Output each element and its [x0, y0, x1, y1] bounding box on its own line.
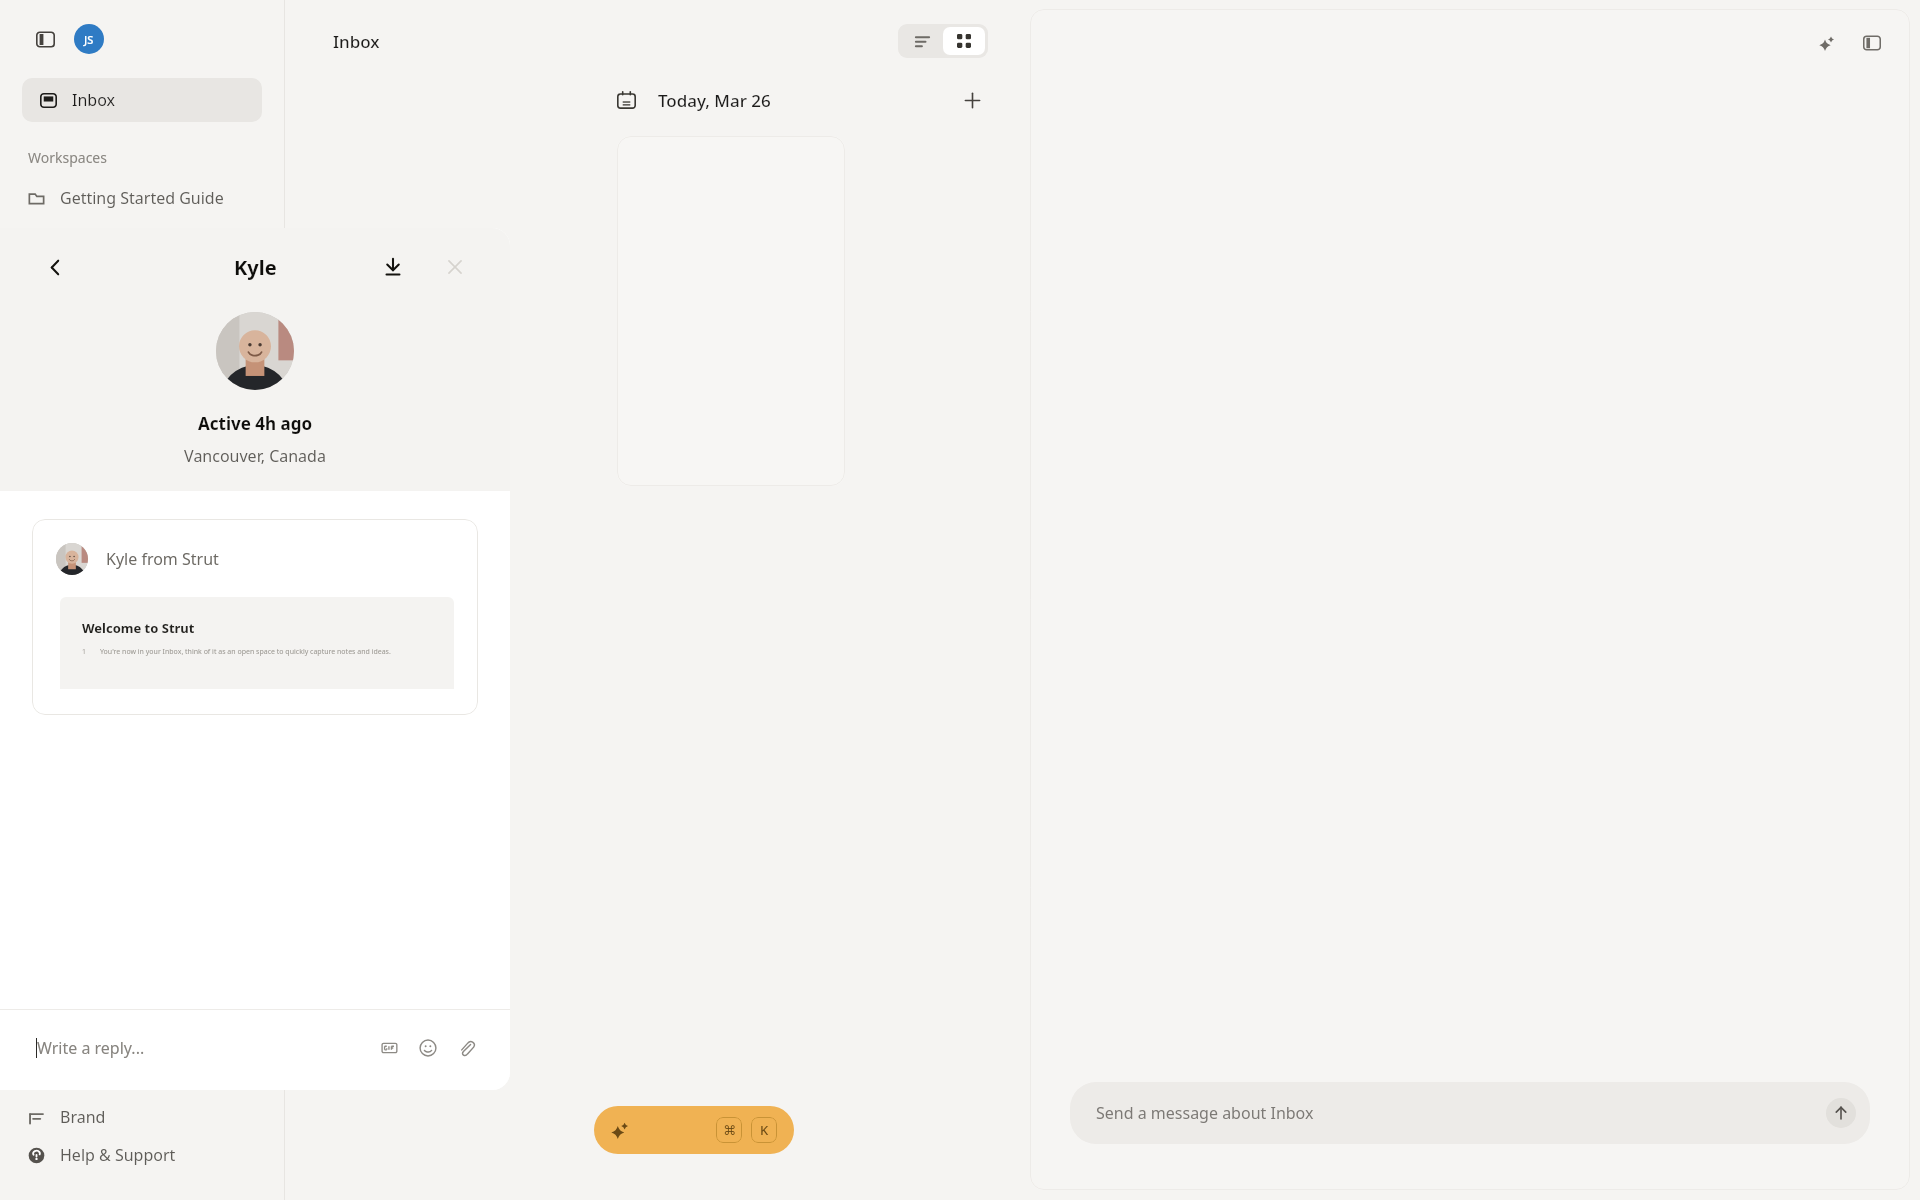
button[interactable]: Toggle panel	[1856, 27, 1888, 59]
button[interactable]: JS	[74, 24, 104, 54]
staticText: Welcome to Strut	[82, 619, 195, 637]
staticText: Workspaces	[28, 148, 107, 167]
button[interactable]: Help & Support	[0, 1136, 284, 1174]
button[interactable]: Getting Started Guide	[0, 181, 284, 215]
staticText: You're now in your Inbox, think of it as…	[100, 647, 391, 657]
button[interactable]: Download	[376, 250, 410, 284]
staticText: Today, Mar 26	[658, 89, 771, 112]
staticText: JS	[84, 32, 94, 47]
button[interactable]: Back	[38, 250, 72, 284]
button[interactable]: Send a message about Inbox	[1070, 1082, 1870, 1144]
button[interactable]: Command menu	[594, 1106, 794, 1154]
staticText: Inbox	[333, 30, 380, 53]
button[interactable]: List view	[901, 27, 943, 55]
button[interactable]: Send	[1826, 1098, 1856, 1128]
staticText: Vancouver, Canada	[0, 445, 510, 467]
staticText: Send a message about Inbox	[1096, 1102, 1314, 1124]
button[interactable]: GIF	[376, 1034, 404, 1062]
button[interactable]: Emoji	[414, 1034, 442, 1062]
button[interactable]: Brand	[0, 1098, 284, 1136]
button[interactable]: Write a reply...	[0, 1010, 510, 1090]
staticText: Help & Support	[60, 1144, 176, 1166]
staticText: K	[760, 1121, 769, 1139]
staticText: Kyle from Strut	[106, 548, 219, 570]
button[interactable]: Kyle from Strut	[32, 519, 478, 715]
button[interactable]: Close	[438, 250, 472, 284]
button[interactable]: Toggle sidebar	[28, 22, 62, 56]
staticText: Getting Started Guide	[60, 187, 224, 209]
button[interactable]: AI assist	[1810, 27, 1842, 59]
staticText: ⌘	[723, 1123, 736, 1138]
button[interactable]: Add	[956, 84, 988, 116]
staticText: Kyle	[234, 254, 277, 281]
staticText: Active 4h ago	[0, 412, 510, 435]
staticText: 1	[82, 647, 87, 657]
button[interactable]: Grid view	[943, 27, 985, 55]
button[interactable]: Attach file	[452, 1034, 480, 1062]
button[interactable]: Inbox	[22, 78, 262, 122]
staticText: Inbox	[72, 89, 115, 111]
staticText: Brand	[60, 1106, 106, 1128]
staticText: Write a reply...	[37, 1037, 145, 1059]
